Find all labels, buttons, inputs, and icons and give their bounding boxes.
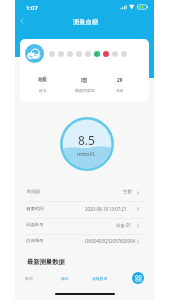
staticText: 时间段: [27, 189, 41, 195]
button[interactable]: 取消: [25, 276, 33, 281]
staticText: mmol/L: [77, 151, 96, 158]
button[interactable]: Reading 1: [49, 51, 55, 57]
staticText: 试条批号: [26, 222, 44, 228]
staticText: 仪器编号: [26, 238, 44, 244]
button[interactable]: [15, 184, 154, 201]
button[interactable]: Reading 6: [94, 51, 100, 57]
button[interactable]: [99, 72, 141, 96]
staticText: 姓名: [39, 88, 47, 93]
staticText: 8.5: [78, 132, 95, 148]
staticText: 最新测量数据: [27, 258, 65, 266]
button[interactable]: Reading 4: [76, 51, 82, 57]
staticText: 1:07: [26, 4, 38, 12]
button[interactable]: 保存: [61, 276, 69, 281]
staticText: 胡星: [38, 77, 48, 83]
staticText: 测量时间: [26, 206, 44, 212]
staticText: 29: [117, 77, 123, 83]
button[interactable]: [15, 218, 154, 234]
staticText: 2020-08-19 13:07:21: [85, 206, 127, 212]
staticText: DN00403Q52057600064: [85, 238, 136, 244]
button[interactable]: Scan device: [132, 272, 144, 284]
button[interactable]: Reading 9: [121, 51, 127, 57]
button[interactable]: [15, 201, 154, 218]
staticText: 空腹: [123, 189, 132, 195]
button[interactable]: Reading 7: [103, 51, 109, 57]
button[interactable]: Reading 2: [58, 51, 64, 57]
button[interactable]: Device status: [25, 44, 44, 63]
button[interactable]: Reading 8: [112, 51, 118, 57]
staticText: I型: [81, 77, 88, 83]
button[interactable]: Reading 5: [85, 51, 91, 57]
staticText: 年龄: [116, 88, 124, 93]
staticText: 试条 01: [116, 222, 131, 228]
button[interactable]: [64, 72, 106, 96]
button[interactable]: Back: [15, 14, 29, 28]
staticText: 糖尿病类型: [75, 88, 95, 93]
button[interactable]: [15, 234, 154, 250]
button[interactable]: 读取数据: [92, 276, 108, 281]
staticText: 测量血糖: [73, 18, 99, 26]
button[interactable]: Reading 3: [67, 51, 73, 57]
button[interactable]: [22, 72, 64, 96]
